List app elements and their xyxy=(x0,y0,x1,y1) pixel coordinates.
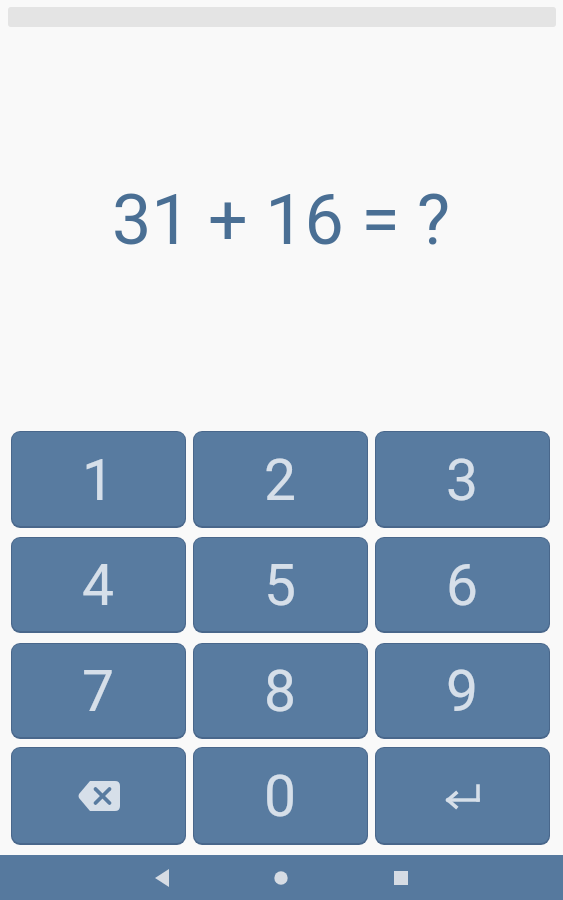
button[interactable]: 7 xyxy=(12,644,185,737)
button[interactable] xyxy=(148,855,176,900)
staticText: 3 xyxy=(446,447,479,514)
button[interactable]: 0 xyxy=(194,748,367,843)
staticText: 4 xyxy=(82,552,115,619)
button[interactable] xyxy=(12,748,185,843)
staticText: 6 xyxy=(446,552,479,619)
button[interactable] xyxy=(267,855,295,900)
staticText: 8 xyxy=(264,658,297,725)
staticText: 9 xyxy=(446,658,479,725)
button[interactable]: 3 xyxy=(376,432,549,526)
button[interactable]: 4 xyxy=(12,538,185,631)
staticText: 0 xyxy=(264,763,297,830)
button[interactable]: 1 xyxy=(12,432,185,526)
staticText: 7 xyxy=(82,658,115,725)
button[interactable]: 6 xyxy=(376,538,549,631)
staticText: 5 xyxy=(264,552,297,619)
staticText: 31 + 16 = ? xyxy=(112,179,451,261)
button[interactable]: 2 xyxy=(194,432,367,526)
button[interactable]: 8 xyxy=(194,644,367,737)
button[interactable]: 9 xyxy=(376,644,549,737)
button[interactable] xyxy=(376,748,549,843)
button[interactable] xyxy=(387,855,415,900)
staticText: 1 xyxy=(82,447,115,514)
staticText: 2 xyxy=(264,447,297,514)
button[interactable]: 5 xyxy=(194,538,367,631)
